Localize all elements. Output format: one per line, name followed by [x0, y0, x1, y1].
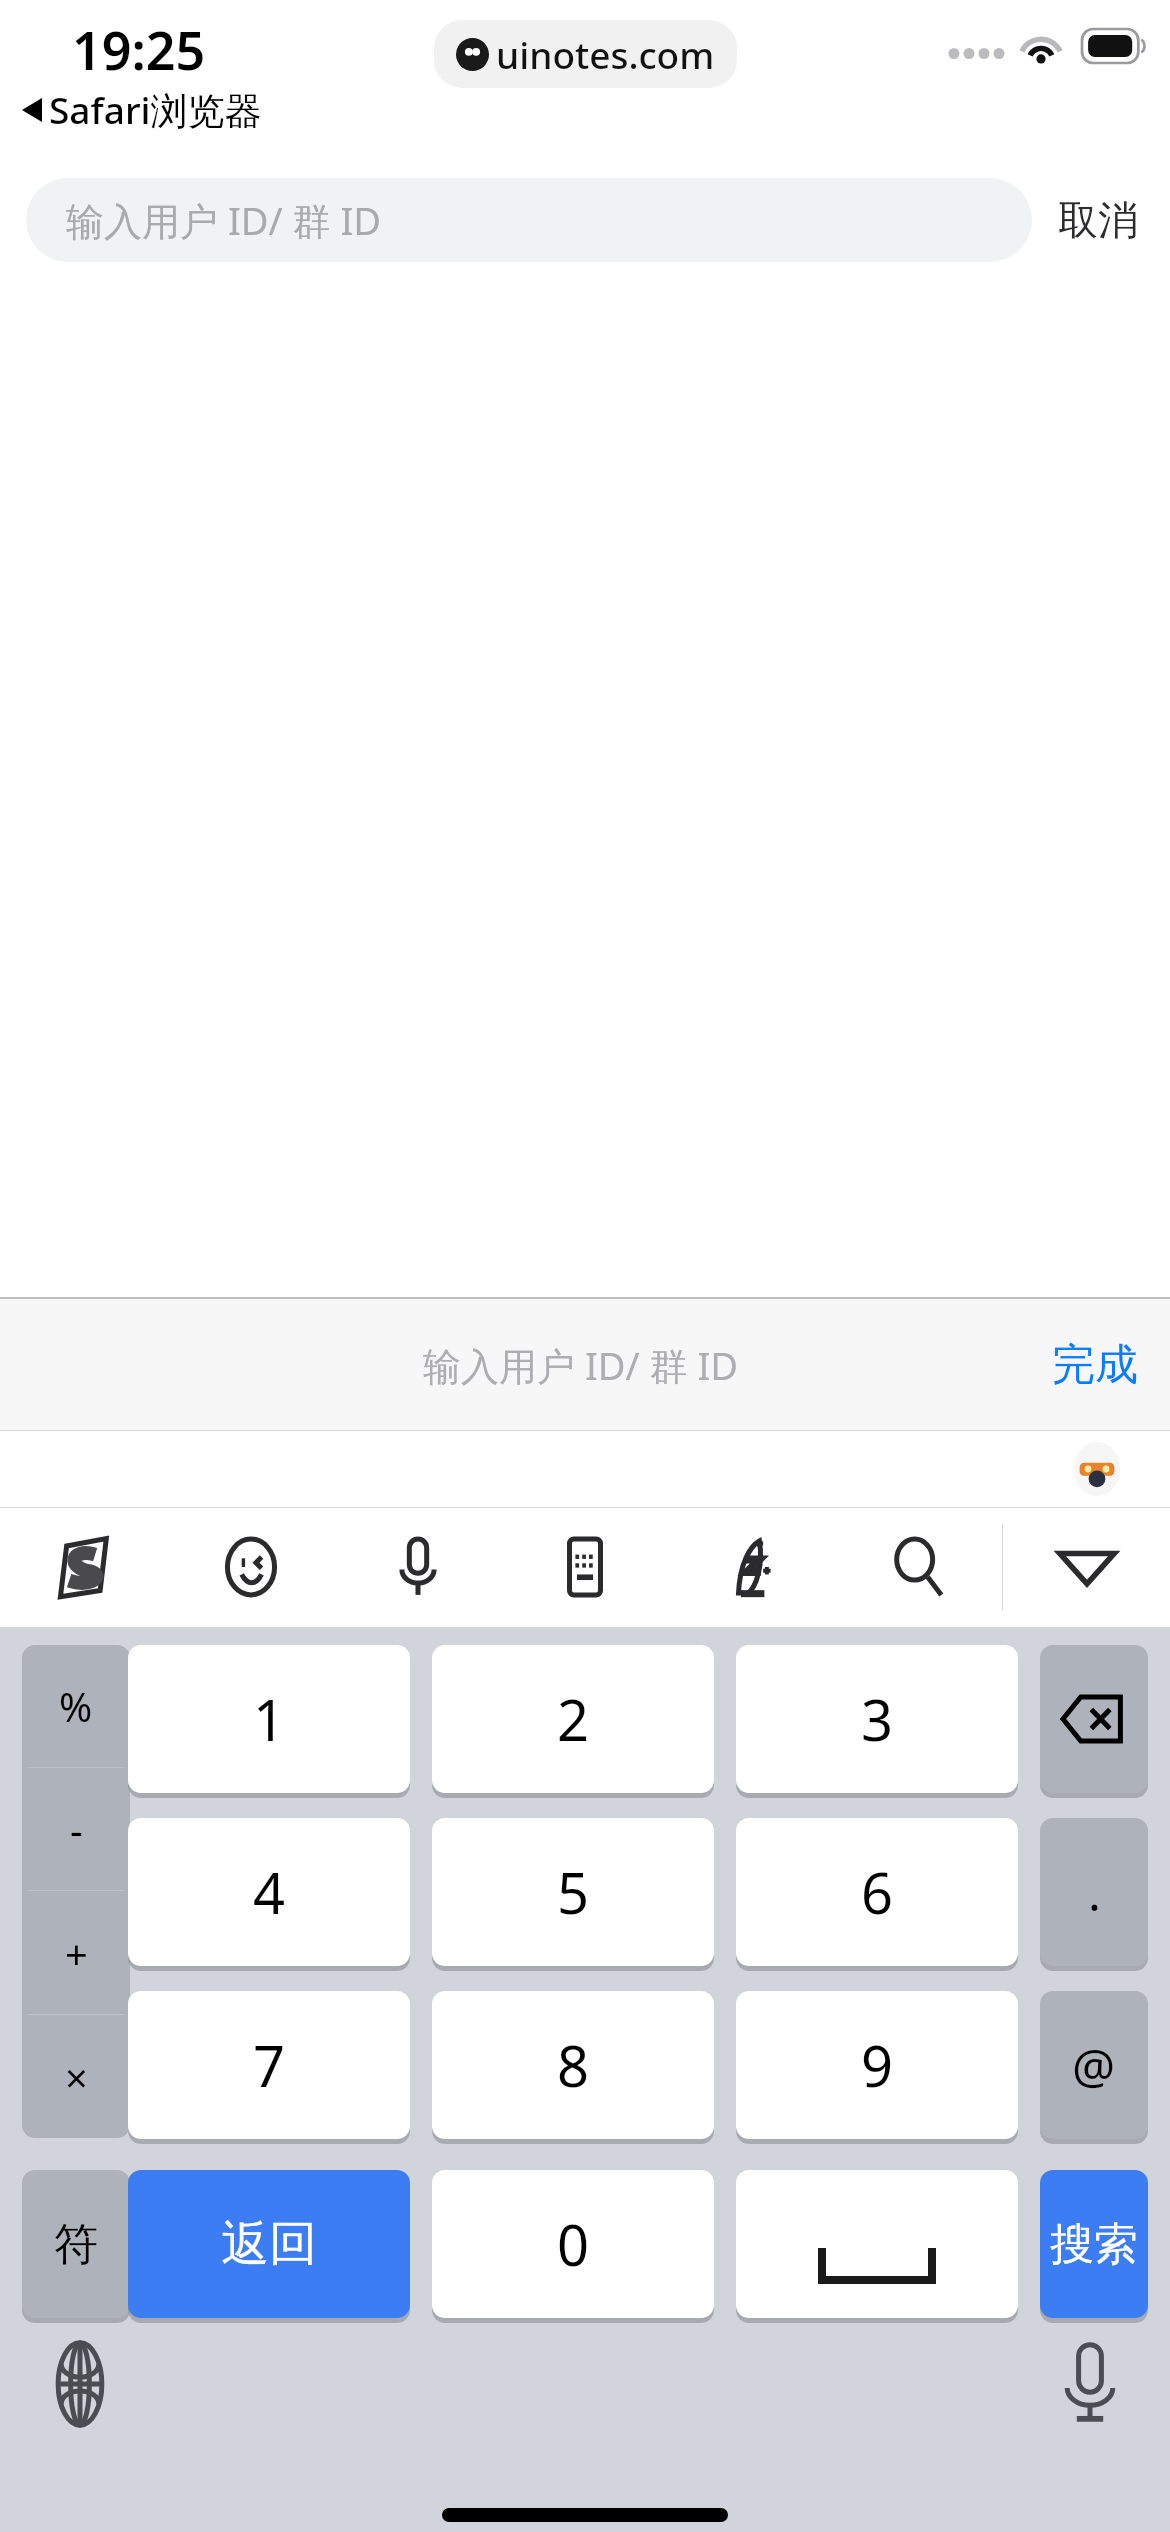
button[interactable]: 搜索	[1040, 2170, 1148, 2318]
staticText: 7	[253, 2027, 286, 2103]
button[interactable]: Change keyboard	[36, 2340, 124, 2428]
button[interactable]: %	[22, 1645, 130, 1767]
button[interactable]: Keyboard	[501, 1507, 668, 1627]
staticText: .	[1088, 1860, 1101, 1925]
button[interactable]: 3	[736, 1645, 1018, 1793]
button[interactable]: 2	[432, 1645, 714, 1793]
staticText: 输入用户 ID/ 群 ID	[423, 1339, 739, 1391]
button[interactable]: 4	[128, 1818, 410, 1966]
button[interactable]: Safari浏览器	[22, 84, 262, 135]
staticText: @	[1072, 2033, 1116, 2098]
button[interactable]: 返回	[128, 2170, 410, 2318]
button[interactable]: Sticker	[1066, 1438, 1128, 1500]
staticText: 返回	[221, 2214, 317, 2274]
button[interactable]: -	[22, 1768, 130, 1890]
staticText: 9	[861, 2027, 894, 2103]
button[interactable]: Space	[736, 2170, 1018, 2318]
button[interactable]: 8	[432, 1991, 714, 2139]
button[interactable]: Voice input	[334, 1507, 501, 1627]
staticText: 2	[557, 1681, 590, 1757]
staticText: 0	[557, 2206, 590, 2282]
staticText: %	[59, 1679, 93, 1733]
button[interactable]: 5	[432, 1818, 714, 1966]
button[interactable]: 取消	[1032, 178, 1144, 262]
staticText: -	[70, 1802, 83, 1856]
staticText: 6	[861, 1854, 894, 1930]
staticText: 19:25	[72, 14, 206, 85]
staticText: 1	[253, 1681, 286, 1757]
staticText: 8	[557, 2027, 590, 2103]
button[interactable]: @	[1040, 1991, 1148, 2139]
button[interactable]: 符	[22, 2170, 130, 2318]
button[interactable]: 输入用户 ID/ 群 ID	[26, 178, 1032, 262]
button[interactable]: 1	[128, 1645, 410, 1793]
staticText: uinotes.com	[496, 29, 715, 79]
button[interactable]: Handwriting	[668, 1507, 835, 1627]
staticText: 5	[557, 1854, 590, 1930]
staticText: Safari浏览器	[49, 84, 262, 135]
staticText: 完成	[1052, 1338, 1138, 1392]
button[interactable]: 6	[736, 1818, 1018, 1966]
button[interactable]: Delete	[1040, 1645, 1148, 1793]
staticText: 符	[54, 2217, 98, 2272]
staticText: 3	[861, 1681, 894, 1757]
button[interactable]: Emoji	[167, 1507, 334, 1627]
button[interactable]: 9	[736, 1991, 1018, 2139]
button[interactable]: ×	[22, 2015, 130, 2138]
button[interactable]: +	[22, 1891, 130, 2014]
staticText: 取消	[1058, 195, 1138, 245]
button[interactable]: Sogou input	[0, 1507, 167, 1627]
button[interactable]: 7	[128, 1991, 410, 2139]
staticText: 输入用户 ID/ 群 ID	[66, 194, 382, 246]
staticText: 搜索	[1050, 2217, 1138, 2272]
button[interactable]: 完成	[1020, 1299, 1170, 1430]
button[interactable]: Dictation	[1046, 2340, 1134, 2428]
button[interactable]: .	[1040, 1818, 1148, 1966]
staticText: +	[65, 1926, 88, 1980]
staticText: ×	[65, 2050, 88, 2104]
staticText: 4	[253, 1854, 286, 1930]
button[interactable]: 0	[432, 2170, 714, 2318]
button[interactable]: Search	[835, 1507, 1002, 1627]
button[interactable]: Hide keyboard	[1003, 1507, 1170, 1627]
